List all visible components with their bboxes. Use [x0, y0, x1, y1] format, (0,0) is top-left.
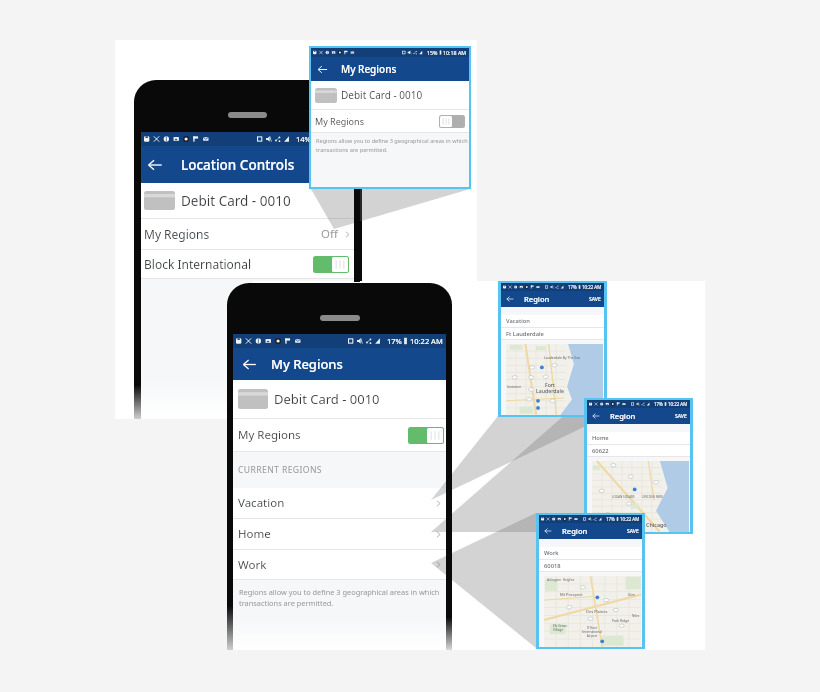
staticText: 10:22 AM: [582, 284, 602, 290]
staticText: 17%: [606, 516, 615, 522]
staticText: 10:22 AM: [410, 336, 443, 346]
staticText: Ft Lauderdale: [506, 330, 544, 338]
staticText: Block International: [144, 256, 252, 272]
staticText: 14%: [296, 134, 311, 144]
staticText: 17%: [387, 336, 402, 346]
staticText: Home: [592, 434, 609, 442]
staticText: Off: [321, 226, 338, 242]
button[interactable]: Back: [587, 408, 604, 424]
staticText: My Regions: [341, 62, 397, 76]
button[interactable]: Toggle: [313, 256, 349, 273]
staticText: Fort Lauderdale: [536, 381, 564, 395]
button[interactable]: Back: [233, 348, 266, 380]
button[interactable]: SAVE: [624, 524, 642, 539]
staticText: 17%: [568, 284, 577, 290]
staticText: Mt Prospect: [560, 592, 583, 597]
staticText: Niles: [632, 614, 640, 618]
staticText: Home: [238, 526, 271, 542]
staticText: Vacation: [506, 317, 530, 325]
button[interactable]: Back: [141, 146, 169, 183]
button[interactable]: Debit Card - 0010: [141, 183, 355, 218]
button[interactable]: My Regions: [141, 219, 355, 249]
staticText: Location Controls: [181, 156, 295, 174]
button[interactable]: Vacation: [233, 488, 446, 518]
staticText: Elk Grove Village: [553, 624, 567, 632]
staticText: 60018: [544, 562, 561, 570]
staticText: My Regions: [238, 427, 301, 443]
staticText: 10:22 AM: [319, 134, 352, 144]
staticText: lantation: [507, 384, 522, 389]
staticText: Region: [610, 411, 636, 421]
staticText: 17%: [654, 401, 663, 407]
staticText: CURRENT REGIONS: [238, 464, 322, 476]
staticText: 60622: [592, 447, 609, 455]
staticText: Vacation: [238, 495, 285, 511]
staticText: Arlington Heights: [547, 578, 575, 582]
button[interactable]: Debit Card - 0010: [233, 380, 446, 418]
staticText: 10:22 AM: [668, 401, 688, 407]
button[interactable]: Debit Card - 0010: [311, 81, 469, 109]
staticText: LOGAN SQUARE: [612, 495, 635, 499]
button[interactable]: Toggle: [408, 427, 444, 444]
staticText: Chicago: [646, 521, 667, 528]
button[interactable]: My Regions: [233, 419, 446, 451]
staticText: SAVE: [675, 413, 687, 420]
staticText: Work: [238, 557, 267, 573]
staticText: Regions allow you to define 3 geographic…: [239, 587, 440, 608]
staticText: 15%: [427, 49, 438, 56]
button[interactable]: SAVE: [586, 292, 604, 307]
staticText: Work: [544, 549, 559, 557]
staticText: My Regions: [271, 355, 343, 373]
staticText: Debit Card - 0010: [274, 390, 380, 408]
button[interactable]: My Regions: [311, 110, 469, 132]
staticText: Debit Card - 0010: [341, 88, 423, 102]
staticText: LINCOLN PARK: [642, 495, 663, 499]
staticText: SAVE: [589, 296, 601, 303]
button[interactable]: Back: [311, 57, 333, 81]
button[interactable]: Work: [233, 550, 446, 579]
staticText: Park Ridge: [612, 618, 630, 623]
staticText: My Regions: [315, 115, 364, 127]
staticText: SAVE: [627, 528, 639, 535]
staticText: O'Hare International Airport: [582, 626, 602, 638]
staticText: Regions allow you to define 3 geographic…: [316, 137, 468, 153]
staticText: Des Plaines: [586, 609, 608, 614]
staticText: Glen: [628, 593, 635, 597]
staticText: My Regions: [144, 226, 210, 242]
button[interactable]: Home: [233, 519, 446, 549]
button[interactable]: Back: [539, 523, 556, 539]
button[interactable]: SAVE: [672, 409, 690, 424]
staticText: Debit Card - 0010: [181, 192, 291, 210]
staticText: Lauderdale By The Sea: [544, 355, 581, 360]
staticText: Region: [524, 294, 550, 304]
button[interactable]: Toggle: [439, 115, 465, 128]
staticText: 10:22 AM: [620, 516, 640, 522]
staticText: 10:18 AM: [443, 49, 467, 56]
button[interactable]: Back: [501, 291, 518, 307]
staticText: Region: [562, 526, 588, 536]
button[interactable]: Block International: [141, 250, 355, 278]
